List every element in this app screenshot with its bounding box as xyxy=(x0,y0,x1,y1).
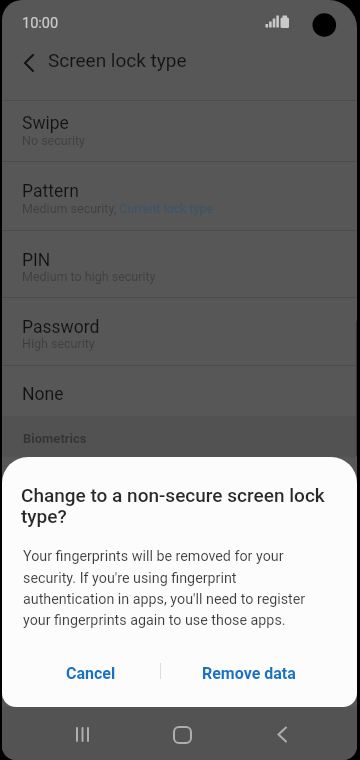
button[interactable]: Remove data xyxy=(190,655,308,691)
button[interactable] xyxy=(10,47,46,79)
staticText: 10:00 xyxy=(22,15,59,32)
button[interactable]: Cancel xyxy=(41,655,141,691)
staticText: Cancel xyxy=(66,664,116,683)
staticText: Password xyxy=(22,317,100,338)
button[interactable] xyxy=(162,717,204,751)
staticText: Change to a non-secure screen lock type? xyxy=(21,484,325,527)
staticText: Remove data xyxy=(202,664,296,683)
staticText: High security xyxy=(22,336,95,351)
staticText: None xyxy=(22,384,64,405)
staticText: PIN xyxy=(22,250,51,271)
button[interactable]: Password xyxy=(2,297,357,365)
staticText: Swipe xyxy=(22,113,69,134)
button[interactable]: Pattern xyxy=(2,161,357,230)
staticText: Your fingerprints will be removed for yo… xyxy=(23,548,306,628)
staticText: Medium to high security xyxy=(22,269,156,284)
button[interactable] xyxy=(62,717,104,751)
staticText: Screen lock type xyxy=(48,49,187,71)
button[interactable]: Swipe xyxy=(2,100,357,161)
staticText: Biometrics xyxy=(23,431,87,446)
button[interactable] xyxy=(260,717,302,751)
button[interactable]: None xyxy=(2,365,357,416)
staticText: Medium security, Current lock type xyxy=(22,201,214,216)
staticText: No security xyxy=(22,133,85,148)
button[interactable]: PIN xyxy=(2,230,357,297)
staticText: Pattern xyxy=(22,181,79,202)
